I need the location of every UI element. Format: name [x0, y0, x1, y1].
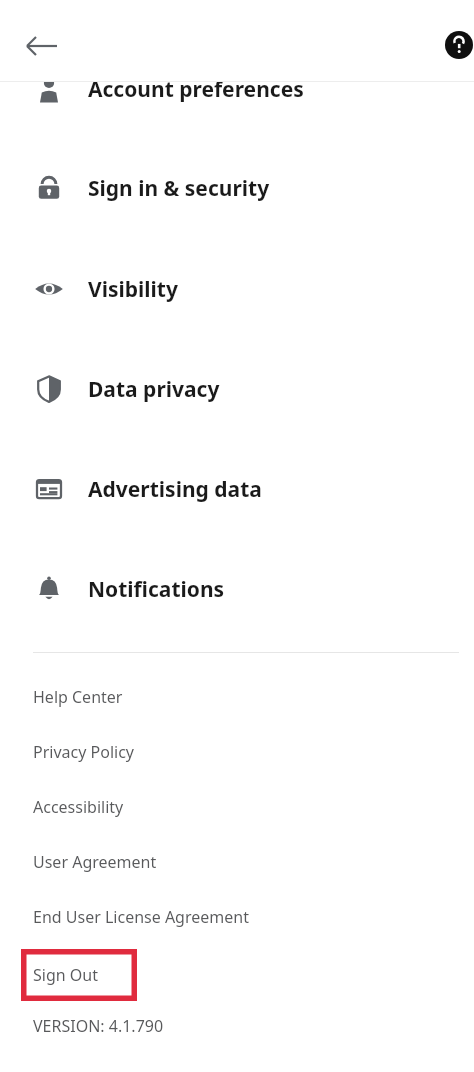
staticText: End User License Agreement: [33, 906, 249, 928]
button[interactable]: User Agreement: [0, 840, 474, 884]
staticText: Data privacy: [88, 375, 220, 404]
button[interactable]: Advertising data: [0, 455, 474, 523]
staticText: User Agreement: [33, 851, 157, 873]
button[interactable]: End User License Agreement: [0, 895, 474, 939]
staticText: Sign Out: [33, 964, 98, 986]
button[interactable]: Help Center: [0, 675, 474, 719]
button[interactable]: Visibility: [0, 255, 474, 323]
staticText: Visibility: [88, 275, 178, 304]
button[interactable]: Notifications: [0, 555, 474, 623]
staticText: Advertising data: [88, 475, 262, 504]
staticText: Sign in & security: [88, 174, 270, 203]
staticText: Account preferences: [88, 82, 304, 104]
button[interactable]: Accessibility: [0, 785, 474, 829]
button[interactable]: Account preferences: [0, 82, 474, 123]
button[interactable]: Privacy Policy: [0, 730, 474, 774]
staticText: Accessibility: [33, 796, 124, 818]
staticText: VERSION: 4.1.790: [33, 1015, 164, 1037]
button[interactable]: Data privacy: [0, 355, 474, 423]
button[interactable]: Sign in & security: [0, 154, 474, 222]
staticText: Notifications: [88, 575, 225, 604]
staticText: Help Center: [33, 686, 123, 708]
button[interactable]: Sign Out: [21, 949, 137, 1001]
staticText: Privacy Policy: [33, 741, 134, 763]
button[interactable]: Back: [14, 18, 70, 74]
button[interactable]: Help: [431, 17, 474, 73]
